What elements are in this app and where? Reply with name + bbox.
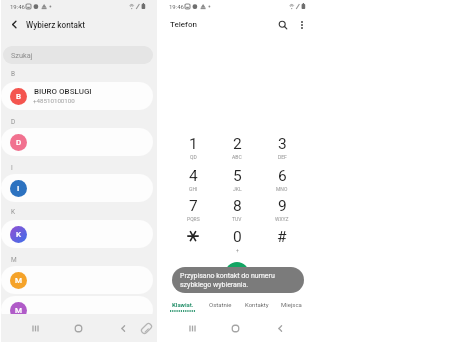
staticText: Wybierz kontakt: [26, 20, 85, 30]
staticText: Telefon: [170, 20, 197, 29]
staticText: D: [16, 138, 22, 147]
staticText: +48510100100: [33, 97, 75, 104]
staticText: #: [277, 228, 287, 246]
button[interactable]: D: [1, 128, 153, 156]
button[interactable]: Miejsca: [272, 301, 310, 315]
staticText: GHI: [189, 186, 198, 192]
staticText: 6: [278, 167, 287, 185]
staticText: BIURO OBSLUGI: [34, 87, 92, 96]
button[interactable]: Back: [6, 16, 22, 32]
button[interactable]: M: [1, 296, 153, 324]
button[interactable]: Search: [274, 16, 292, 34]
button[interactable]: 8: [217, 197, 257, 228]
staticText: JKL: [233, 186, 242, 192]
staticText: 5: [233, 167, 242, 185]
button[interactable]: Home: [65, 314, 91, 342]
button[interactable]: Szukaj: [3, 46, 153, 64]
staticText: +: [236, 247, 239, 253]
staticText: I: [17, 184, 20, 193]
button[interactable]: Back: [110, 314, 136, 342]
staticText: Klawiat.: [172, 301, 194, 308]
button[interactable]: 5: [217, 167, 257, 198]
staticText: I: [11, 164, 13, 172]
button[interactable]: [173, 228, 213, 259]
staticText: 9: [278, 197, 287, 215]
staticText: M: [15, 306, 22, 315]
staticText: B: [16, 92, 22, 101]
staticText: Przypisano kontakt do numeru: [180, 272, 275, 280]
staticText: 7: [189, 197, 198, 215]
staticText: 19:46: [10, 3, 25, 10]
button[interactable]: #: [262, 228, 302, 259]
button[interactable]: Recents: [179, 314, 205, 342]
staticText: M: [11, 256, 17, 264]
button[interactable]: K: [1, 220, 153, 248]
button[interactable]: Back: [267, 314, 293, 342]
button[interactable]: Call: [225, 262, 249, 286]
staticText: QD: [190, 154, 197, 160]
button[interactable]: 6: [262, 167, 302, 198]
staticText: WXYZ: [275, 216, 289, 222]
staticText: B: [11, 70, 16, 78]
staticText: 1: [189, 135, 198, 153]
staticText: ABC: [232, 154, 242, 160]
button[interactable]: Ostatnie: [201, 301, 239, 315]
staticText: MNO: [276, 186, 288, 192]
button[interactable]: 9: [262, 197, 302, 228]
staticText: K: [11, 208, 16, 216]
staticText: PQRS: [187, 216, 200, 222]
button[interactable]: Hide keyboard: [135, 314, 157, 342]
staticText: DEF: [278, 154, 287, 160]
staticText: M: [15, 276, 22, 285]
button[interactable]: I: [1, 174, 153, 202]
staticText: K: [16, 230, 22, 239]
button[interactable]: B: [1, 82, 153, 110]
button[interactable]: 2: [217, 135, 257, 166]
staticText: Ostatnie: [209, 301, 232, 308]
staticText: Kontakty: [245, 301, 269, 308]
staticText: D: [11, 118, 16, 126]
staticText: 4: [189, 167, 198, 185]
staticText: 2: [233, 135, 242, 153]
staticText: TUV: [232, 216, 242, 222]
staticText: 3: [278, 135, 287, 153]
button[interactable]: Kontakty: [238, 301, 276, 315]
button[interactable]: 0: [217, 228, 257, 259]
button[interactable]: Home: [222, 314, 248, 342]
button[interactable]: Klawiat.: [164, 301, 202, 315]
button[interactable]: Recents: [22, 314, 48, 342]
staticText: 8: [233, 197, 242, 215]
staticText: 19:46: [169, 3, 184, 10]
button[interactable]: 1: [173, 135, 213, 166]
button[interactable]: More options: [293, 16, 311, 34]
button[interactable]: 3: [262, 135, 302, 166]
button[interactable]: M: [1, 266, 153, 294]
button[interactable]: 4: [173, 167, 213, 198]
button[interactable]: 7: [173, 197, 213, 228]
staticText: 0: [233, 228, 242, 246]
staticText: Szukaj: [11, 51, 33, 60]
staticText: szybkiego wybierania.: [180, 281, 249, 289]
staticText: Miejsca: [281, 301, 302, 308]
